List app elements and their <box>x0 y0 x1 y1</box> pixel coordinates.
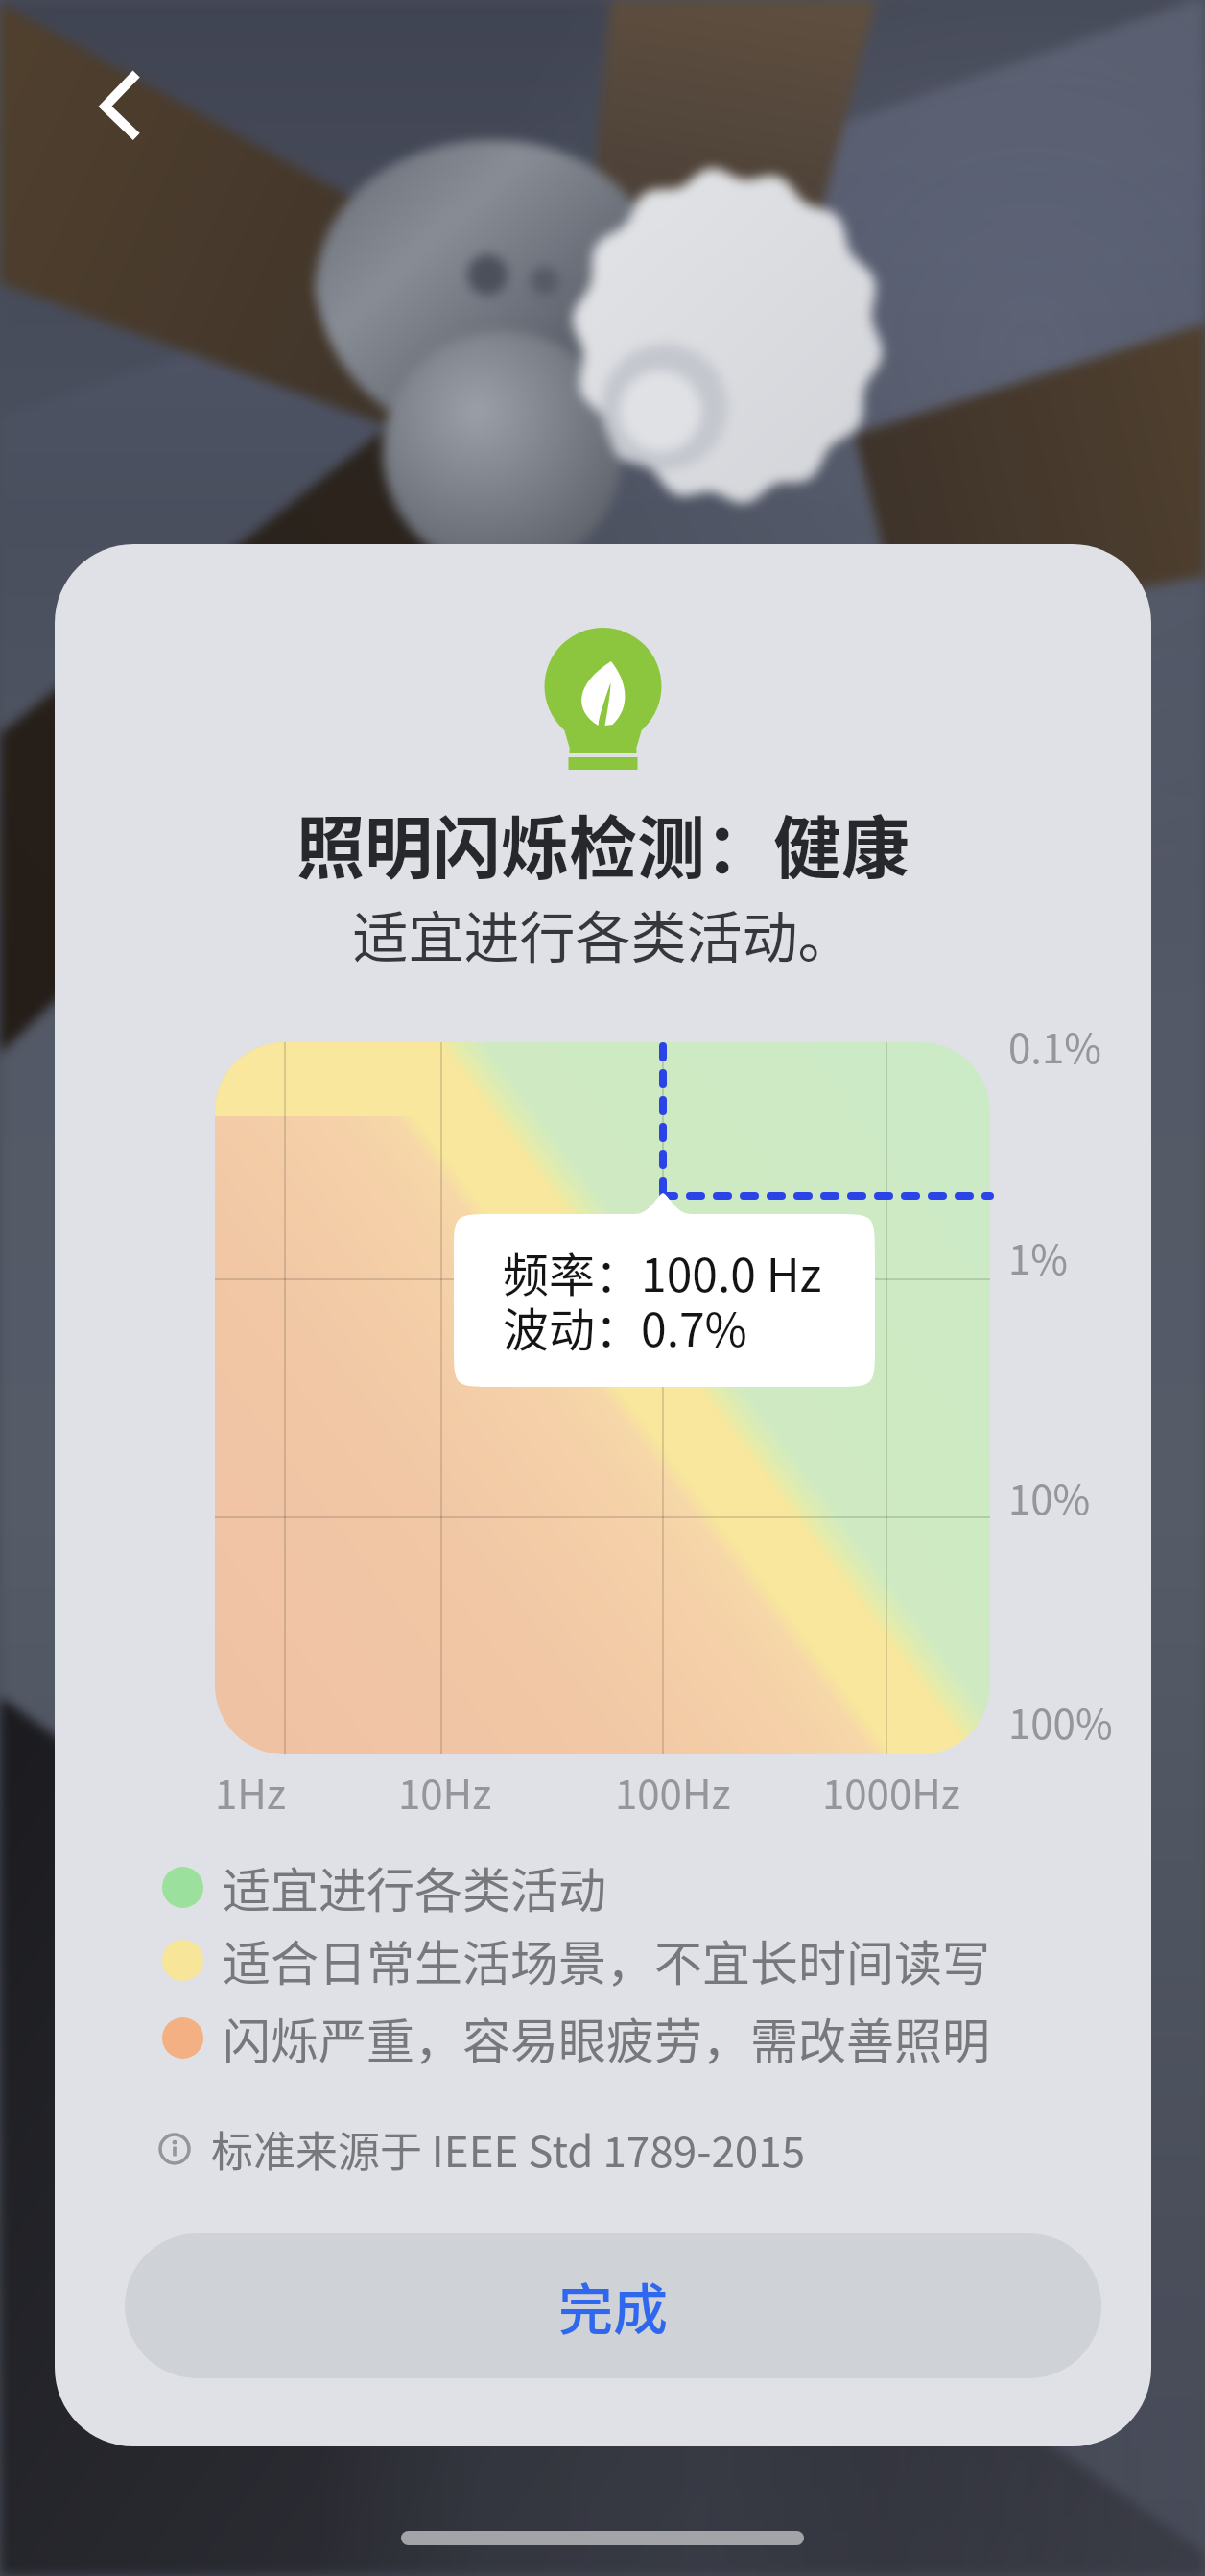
staticText: 标准来源于 IEEE Std 1789-2015 <box>211 2118 806 2180</box>
staticText: 1% <box>1008 1228 1068 1286</box>
staticText: 1000Hz <box>822 1762 960 1821</box>
staticText: 1Hz <box>215 1762 286 1821</box>
staticText: 适合日常生活场景，不宜长时间读写 <box>223 1925 990 1994</box>
staticText: 100% <box>1008 1692 1113 1751</box>
button[interactable]: 完成 <box>125 2233 1101 2378</box>
staticText: 频率：100.0 Hz 波动：0.7% <box>503 1238 822 1360</box>
button[interactable]: Back <box>56 54 163 161</box>
staticText: 完成 <box>558 2266 668 2346</box>
staticText: 适宜进行各类活动 <box>223 1852 606 1921</box>
staticText: 100Hz <box>615 1762 731 1821</box>
staticText: 0.1% <box>1008 1016 1101 1075</box>
staticText: 10Hz <box>398 1762 492 1821</box>
staticText: 照明闪烁检测：健康 <box>55 794 1151 893</box>
staticText: 闪烁严重，容易眼疲劳，需改善照明 <box>223 2003 990 2072</box>
staticText: 10% <box>1008 1467 1091 1526</box>
staticText: 适宜进行各类活动。 <box>55 894 1151 974</box>
